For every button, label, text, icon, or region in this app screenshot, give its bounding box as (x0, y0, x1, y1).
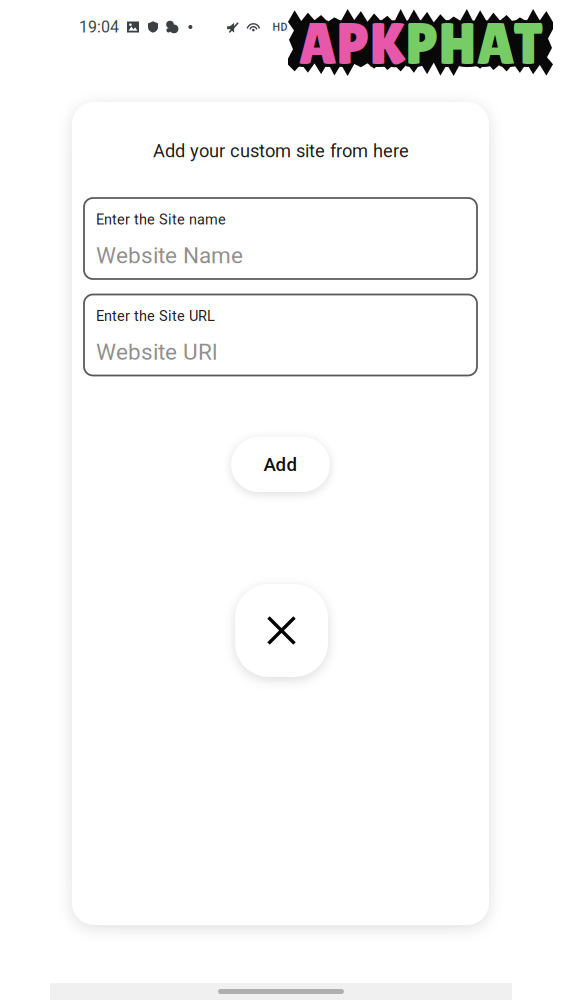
button[interactable]: Enter the Site URL (84, 294, 477, 375)
staticText: APK (301, 13, 408, 80)
staticText: PHAT (403, 7, 540, 74)
staticText: APK (296, 10, 403, 77)
staticText: PHAT (405, 7, 542, 74)
staticText: APK (298, 7, 405, 74)
staticText: APK (298, 10, 405, 77)
staticText: HD (272, 21, 287, 33)
staticText: APK (296, 13, 403, 80)
staticText: Website Name (96, 242, 243, 269)
staticText: PHAT (408, 7, 545, 74)
button[interactable]: Enter the Site name (84, 198, 477, 279)
button[interactable]: Close (235, 584, 328, 677)
staticText: PHAT (408, 10, 545, 77)
staticText: Website URl (96, 339, 217, 365)
staticText: APK (298, 13, 405, 80)
staticText: PHAT (403, 13, 540, 80)
staticText: 19:04 (79, 18, 119, 36)
staticText: Add (263, 454, 297, 475)
button[interactable]: Add (231, 437, 330, 492)
staticText: Enter the Site URL (96, 307, 215, 324)
staticText: PHAT (408, 13, 545, 80)
staticText: PHAT (405, 10, 542, 77)
staticText: Enter the Site name (96, 211, 226, 228)
staticText: APK (296, 7, 403, 74)
staticText: PHAT (403, 10, 540, 77)
staticText: APK (301, 10, 408, 77)
staticText: PHAT (405, 13, 542, 80)
staticText: APK (301, 7, 408, 74)
staticText: Add your custom site from here (153, 140, 409, 162)
